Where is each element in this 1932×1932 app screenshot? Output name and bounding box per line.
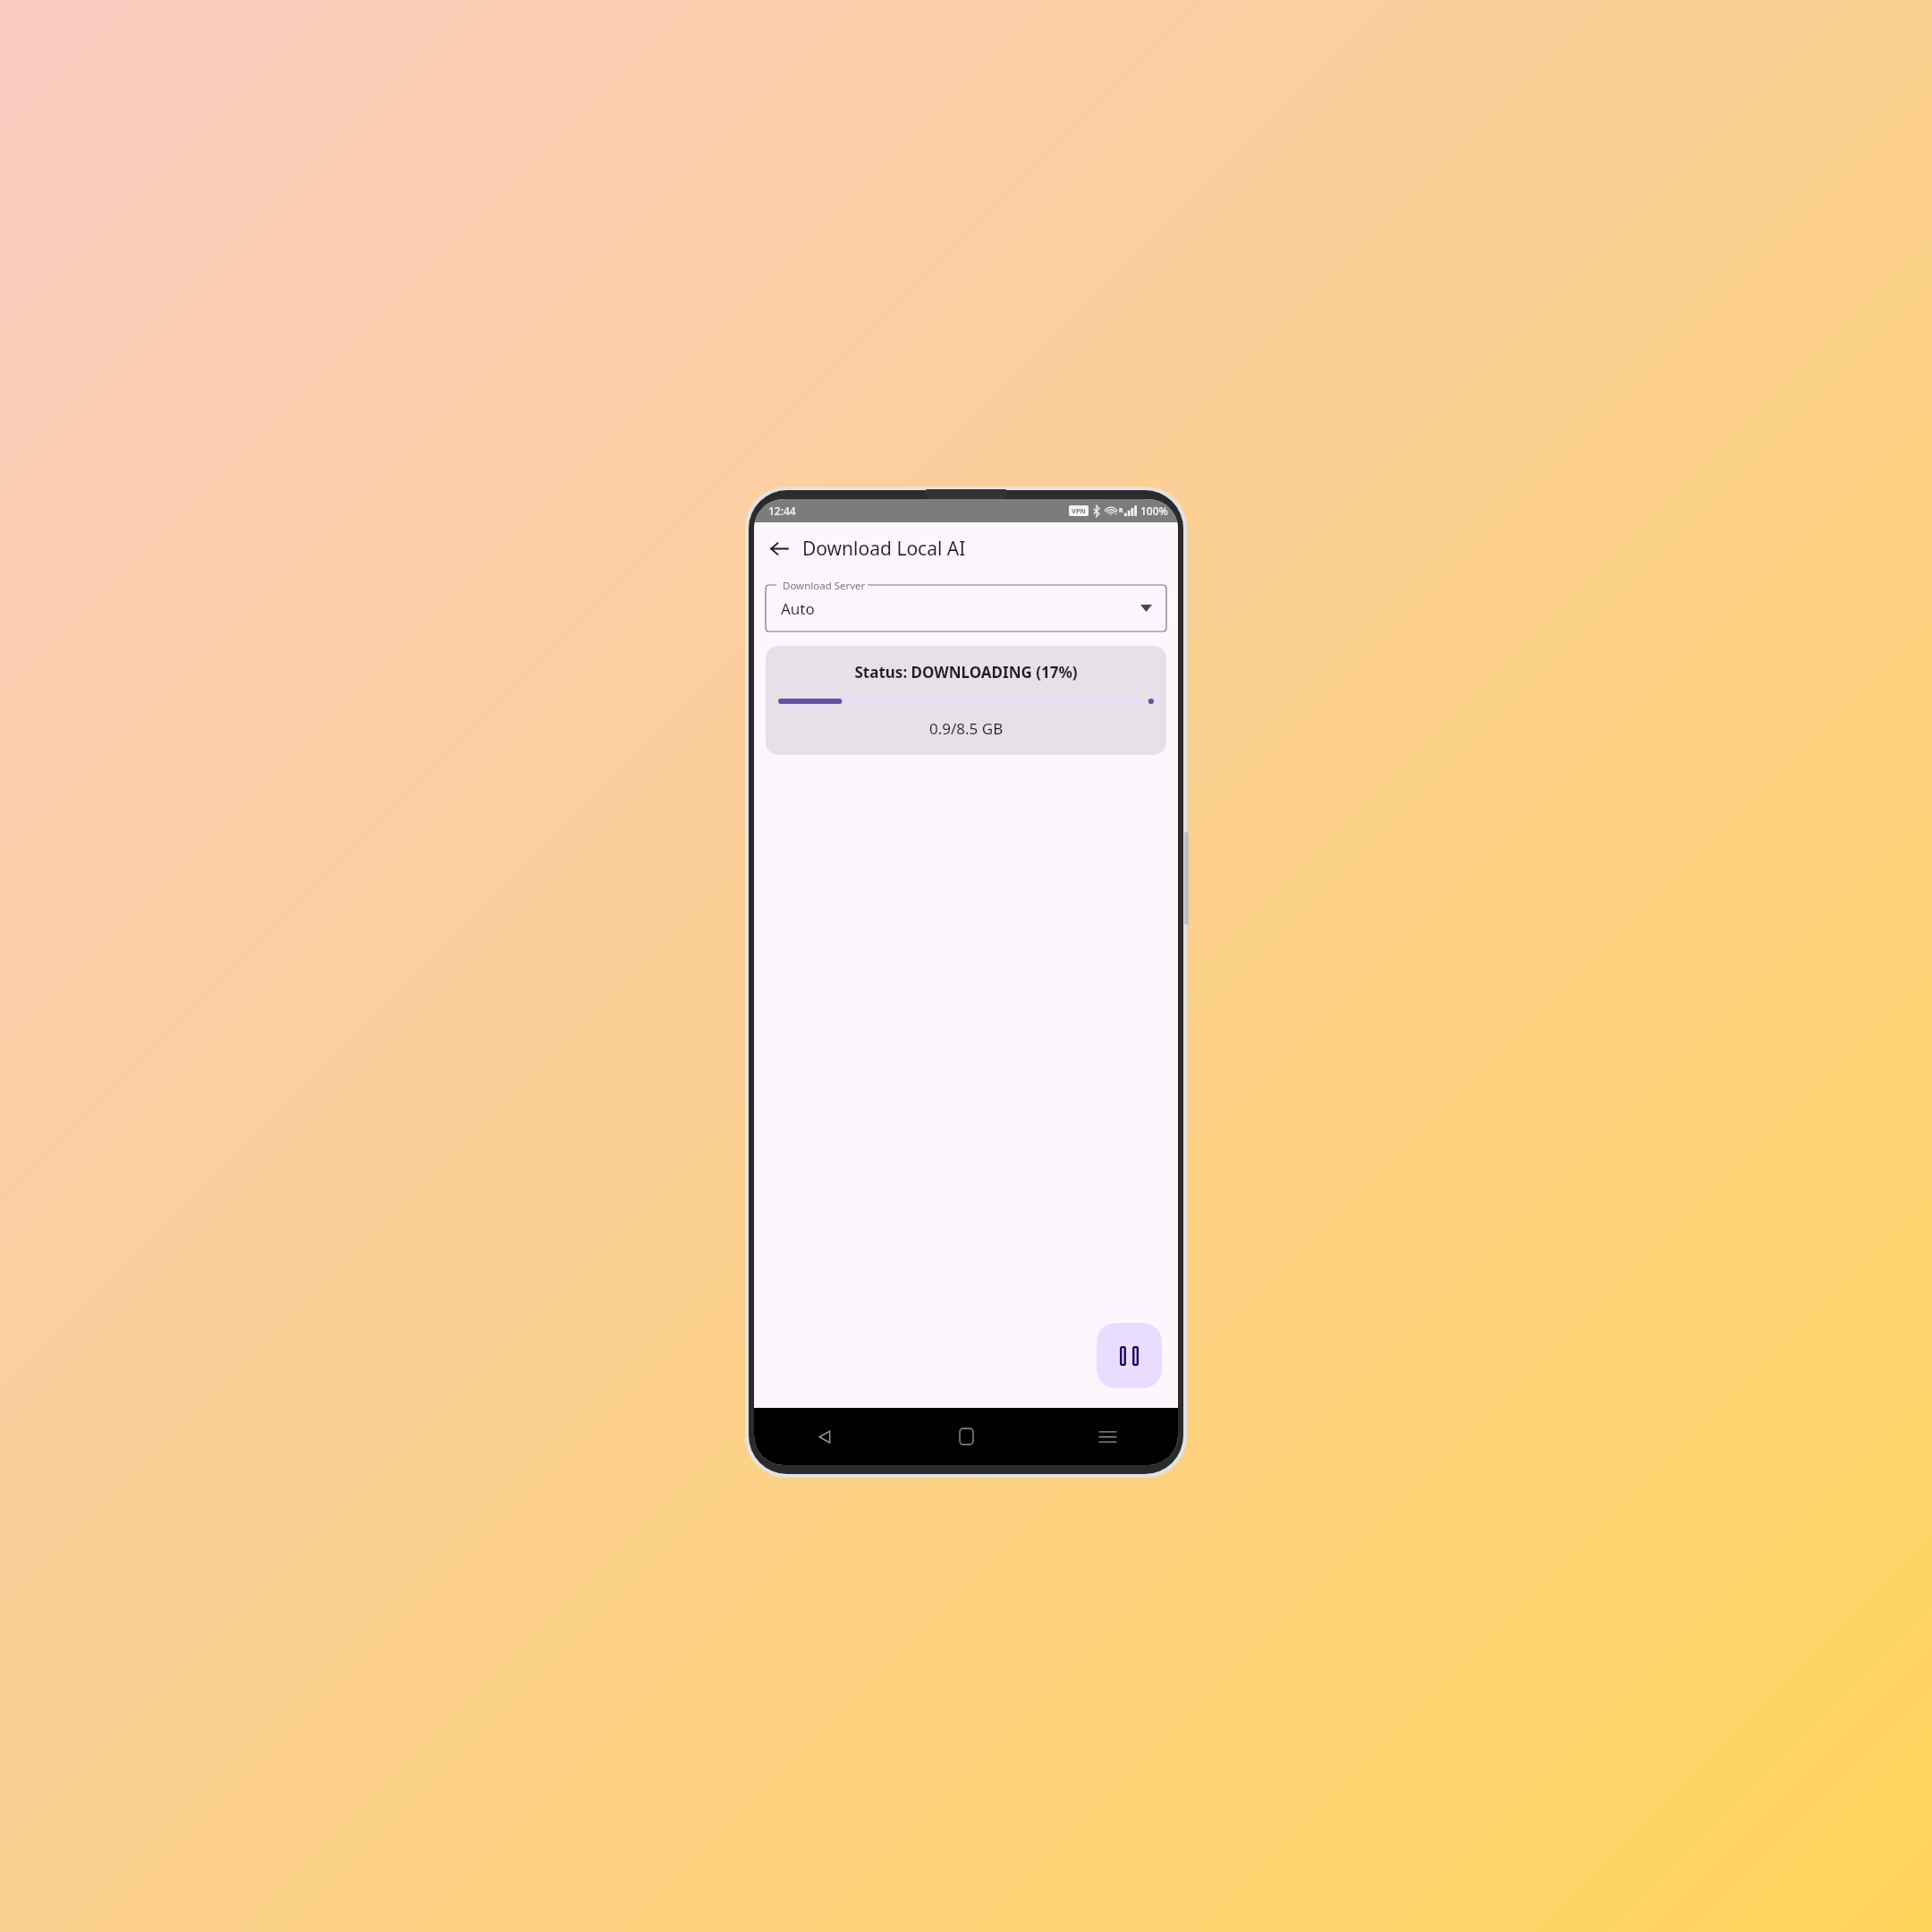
- staticText: Auto: [781, 598, 815, 619]
- button[interactable]: Home: [946, 1417, 986, 1456]
- button[interactable]: Back: [759, 529, 799, 568]
- staticText: VPN: [1072, 506, 1086, 515]
- staticText: 100%: [1140, 504, 1168, 518]
- button[interactable]: Status: DOWNLOADING (17%): [766, 646, 1166, 755]
- staticText: Download Server: [783, 579, 866, 593]
- button[interactable]: Back: [805, 1417, 844, 1456]
- staticText: Status: DOWNLOADING (17%): [854, 662, 1078, 682]
- staticText: Download Local AI: [802, 536, 966, 562]
- button[interactable]: Recent apps: [1088, 1417, 1127, 1456]
- button[interactable]: Pause download: [1097, 1323, 1162, 1388]
- button[interactable]: Download Server: [766, 585, 1166, 631]
- staticText: 0.9/8.5 GB: [929, 718, 1004, 739]
- staticText: 12:44: [768, 504, 796, 518]
- staticText: R: [1119, 506, 1123, 515]
